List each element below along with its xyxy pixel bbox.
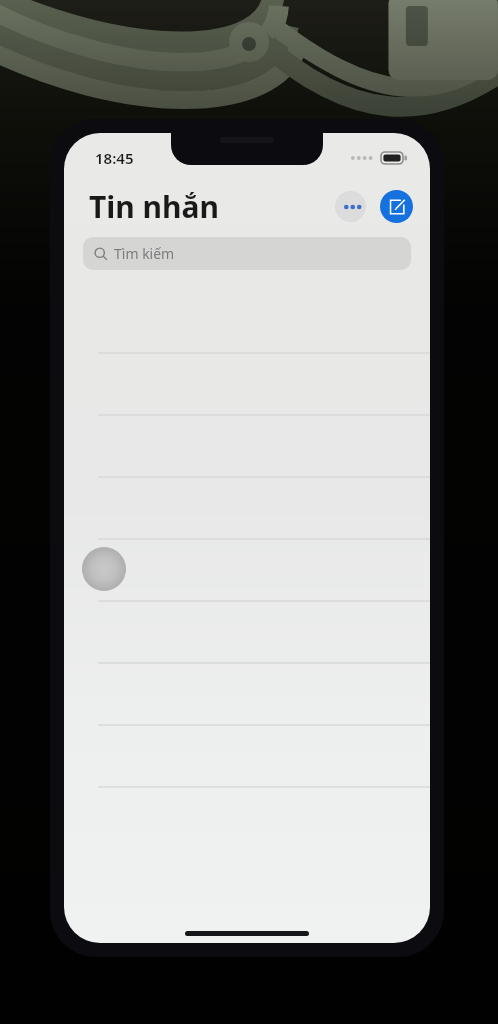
staticText: 18:45	[95, 148, 134, 168]
button[interactable]: Tìm kiếm	[83, 237, 411, 270]
button[interactable]: New message	[380, 190, 413, 223]
button[interactable]	[64, 540, 430, 602]
staticText: Tìm kiếm	[114, 244, 175, 263]
button[interactable]: More options	[335, 191, 366, 222]
staticText: Tin nhắn	[89, 186, 220, 227]
button[interactable]	[64, 726, 430, 788]
